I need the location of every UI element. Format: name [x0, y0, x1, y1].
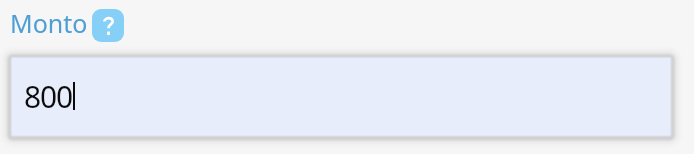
staticText: Monto [10, 6, 88, 40]
button[interactable]: 800 [10, 56, 673, 137]
button[interactable]: Ayuda [92, 9, 124, 42]
staticText: 800 [24, 76, 72, 117]
